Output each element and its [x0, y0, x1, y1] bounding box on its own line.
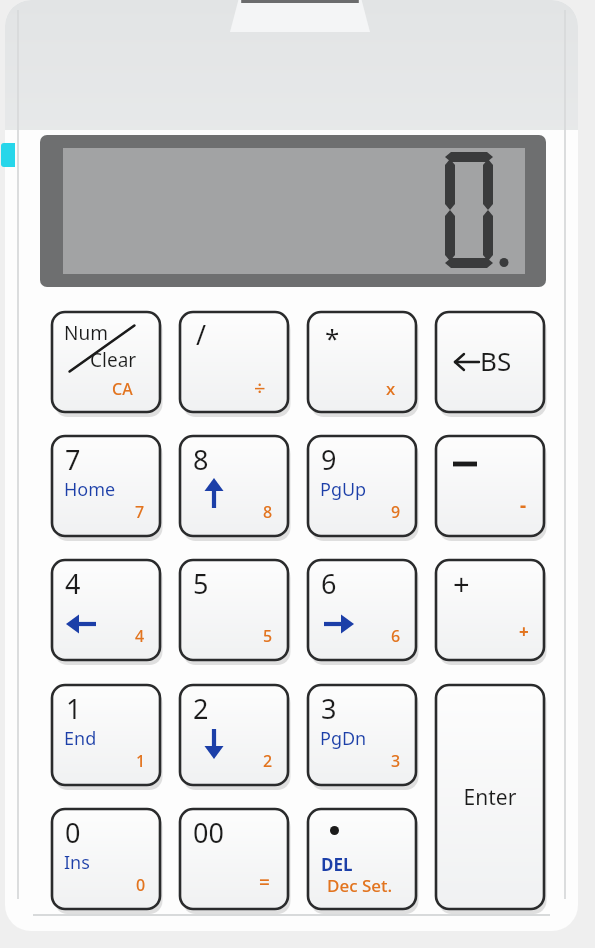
button[interactable]: 8 Arrow Up — [180, 436, 288, 536]
staticText: 2 — [263, 750, 371, 774]
staticText: Enter — [436, 783, 544, 815]
staticText: 00 — [193, 814, 301, 855]
staticText: DEL — [321, 853, 429, 879]
staticText: Home — [64, 477, 172, 504]
staticText: 7 — [65, 441, 173, 482]
staticText: Ins — [64, 850, 172, 877]
staticText: CA — [112, 378, 220, 402]
button[interactable]: 6 Arrow Right — [308, 560, 416, 660]
staticText: 1 — [66, 690, 174, 731]
button[interactable]: 7 Home — [52, 436, 160, 536]
staticText: 3 — [391, 750, 499, 774]
button[interactable]: Enter — [436, 685, 544, 909]
staticText: End — [64, 726, 172, 753]
staticText: 1 — [136, 750, 244, 774]
staticText: 0 — [136, 874, 244, 898]
staticText: 4 — [65, 565, 173, 606]
staticText: + — [453, 564, 561, 608]
staticText: PgUp — [320, 477, 428, 504]
button[interactable]: Multiply — [308, 312, 416, 412]
button[interactable]: 9 Page Up — [308, 436, 416, 536]
button[interactable]: Double Zero Equals — [180, 809, 288, 909]
staticText: 8 — [263, 501, 371, 525]
button[interactable]: Backspace — [436, 312, 544, 412]
button[interactable]: Plus — [436, 560, 544, 660]
staticText: 6 — [321, 565, 429, 606]
button[interactable]: 2 Arrow Down — [180, 685, 288, 785]
staticText: + — [519, 620, 595, 646]
staticText: 0 — [65, 814, 173, 855]
button[interactable]: Decimal Point DEL Dec Set — [308, 809, 416, 909]
button[interactable]: 3 Page Down — [308, 685, 416, 785]
staticText: 5 — [263, 625, 371, 649]
button[interactable]: Num Lock Clear CA — [52, 312, 160, 412]
staticText: * — [325, 320, 433, 359]
staticText: = — [259, 869, 367, 898]
staticText: Dec Set. — [327, 874, 435, 900]
staticText: BS — [480, 343, 588, 382]
staticText: 3 — [321, 690, 429, 731]
staticText: x — [386, 377, 494, 403]
staticText: ÷ — [254, 374, 362, 404]
staticText: Num — [64, 320, 172, 349]
staticText: 7 — [135, 501, 243, 525]
button[interactable]: 5 — [180, 560, 288, 660]
staticText: - — [520, 492, 595, 521]
staticText: / — [196, 316, 304, 357]
staticText: 6 — [391, 625, 499, 649]
staticText: 4 — [135, 625, 243, 649]
staticText: 2 — [193, 690, 301, 731]
button[interactable]: Minus — [436, 436, 544, 536]
button[interactable]: 0 Insert — [52, 809, 160, 909]
staticText: PgDn — [320, 726, 428, 753]
staticText: 8 — [193, 441, 301, 482]
staticText: 5 — [193, 565, 301, 606]
staticText: 9 — [391, 501, 499, 525]
button[interactable]: 4 Arrow Left — [52, 560, 160, 660]
staticText: Clear — [90, 347, 198, 376]
staticText: 9 — [321, 441, 429, 482]
button[interactable]: Divide — [180, 312, 288, 412]
button[interactable]: 1 End — [52, 685, 160, 785]
